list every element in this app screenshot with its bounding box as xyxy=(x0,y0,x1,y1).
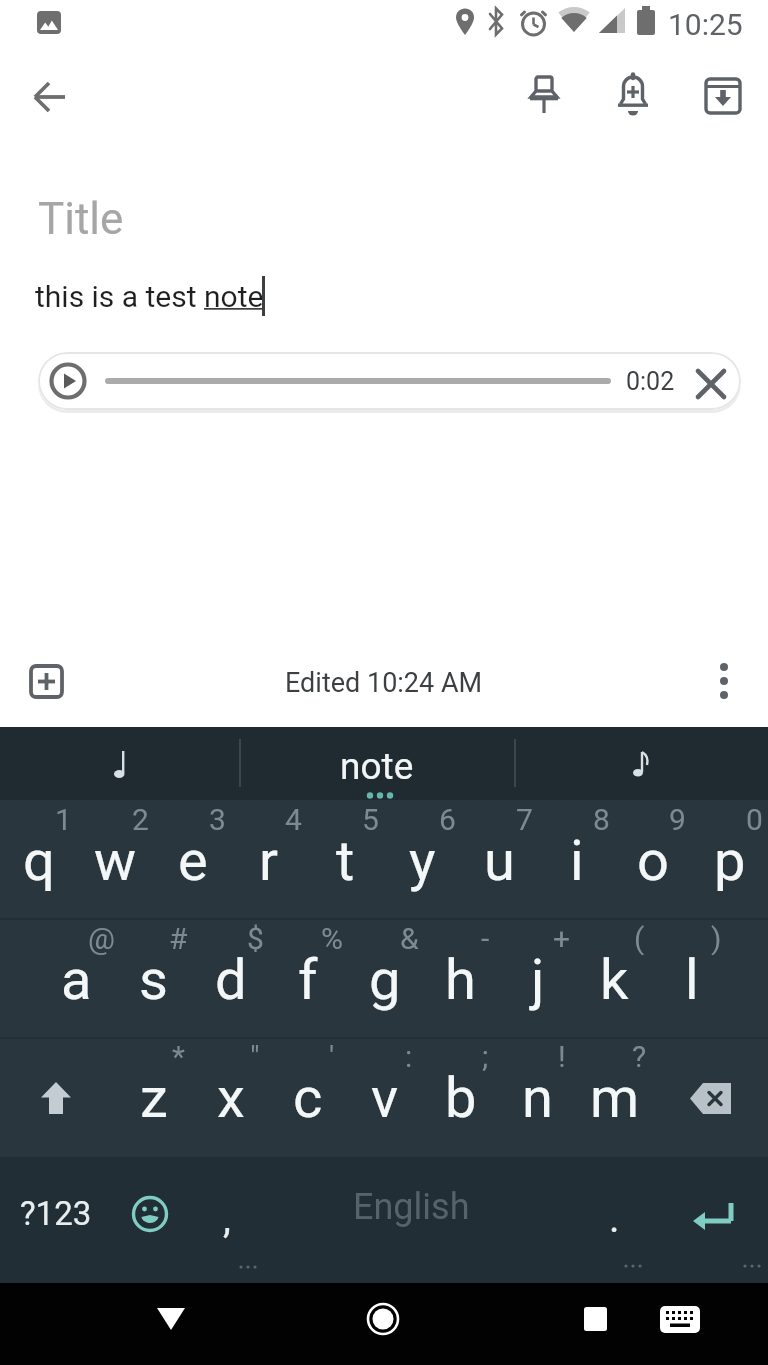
staticText: r xyxy=(259,828,278,894)
staticText: ? xyxy=(632,1039,647,1073)
button[interactable]: w xyxy=(77,806,154,916)
staticText: Title xyxy=(38,193,124,245)
button[interactable]: . xyxy=(592,1185,636,1251)
staticText: 2 xyxy=(132,802,149,836)
button[interactable]: ?123 xyxy=(10,1185,102,1241)
button[interactable] xyxy=(702,76,744,116)
button[interactable]: u xyxy=(461,806,538,916)
button[interactable]: n xyxy=(499,1043,576,1153)
staticText: z xyxy=(140,1065,168,1131)
staticText: d xyxy=(215,947,247,1013)
button[interactable]: e xyxy=(154,806,231,916)
button[interactable]: p xyxy=(691,806,768,916)
button[interactable]: d xyxy=(192,925,269,1035)
staticText: h xyxy=(445,947,476,1013)
staticText: % xyxy=(321,921,343,955)
staticText: & xyxy=(400,921,419,955)
button[interactable]: l xyxy=(653,925,730,1035)
staticText: . xyxy=(609,1195,620,1242)
staticText: ' xyxy=(329,1039,335,1073)
staticText: q xyxy=(23,828,55,894)
staticText: v xyxy=(371,1065,399,1131)
staticText: ; xyxy=(482,1039,489,1073)
staticText: 0:02 xyxy=(626,367,675,396)
button[interactable] xyxy=(613,72,653,118)
staticText: 5 xyxy=(362,802,379,836)
button[interactable] xyxy=(580,1304,610,1334)
button[interactable]: y xyxy=(384,806,461,916)
button[interactable]: x xyxy=(192,1043,269,1153)
staticText: f xyxy=(298,947,318,1013)
button[interactable]: h xyxy=(422,925,499,1035)
button[interactable]: English xyxy=(307,1157,515,1257)
staticText: ( xyxy=(634,921,645,955)
button[interactable]: j xyxy=(499,925,576,1035)
staticText: $ xyxy=(247,921,264,955)
button[interactable] xyxy=(660,1306,702,1335)
button[interactable] xyxy=(693,366,729,402)
staticText: Edited 10:24 AM xyxy=(285,667,483,699)
button[interactable]: q xyxy=(0,806,77,916)
button[interactable]: s xyxy=(115,925,192,1035)
button[interactable]: b xyxy=(422,1043,499,1153)
button[interactable] xyxy=(120,1184,180,1244)
staticText: i xyxy=(570,828,584,894)
staticText: 0 xyxy=(746,802,763,836)
staticText: x xyxy=(217,1065,245,1131)
button[interactable] xyxy=(29,664,65,700)
button[interactable]: note xyxy=(240,730,514,803)
button[interactable] xyxy=(144,1296,198,1342)
button[interactable]: i xyxy=(538,806,615,916)
button[interactable] xyxy=(360,1296,406,1342)
staticText: 7 xyxy=(516,802,533,836)
staticText: s xyxy=(139,947,168,1013)
staticText: 3 xyxy=(209,802,226,836)
staticText: w xyxy=(94,828,137,894)
staticText: k xyxy=(600,947,629,1013)
button[interactable]: f xyxy=(269,925,346,1035)
staticText: * xyxy=(172,1039,185,1073)
staticText: ! xyxy=(558,1039,566,1073)
button[interactable] xyxy=(683,1185,747,1241)
button[interactable] xyxy=(50,363,86,399)
staticText: p xyxy=(714,828,746,894)
staticText: g xyxy=(369,947,401,1013)
button[interactable]: z xyxy=(115,1043,192,1153)
staticText: 8 xyxy=(593,802,610,836)
button[interactable]: o xyxy=(614,806,691,916)
button[interactable] xyxy=(0,727,239,800)
button[interactable] xyxy=(682,1043,742,1153)
staticText: 6 xyxy=(439,802,456,836)
button[interactable]: r xyxy=(230,806,307,916)
staticText: t xyxy=(336,828,355,894)
staticText: @ xyxy=(88,921,115,955)
staticText: ) xyxy=(711,921,722,955)
staticText: m xyxy=(590,1065,640,1131)
button[interactable]: a xyxy=(38,925,115,1035)
staticText: u xyxy=(484,828,515,894)
button[interactable]: v xyxy=(346,1043,423,1153)
button[interactable]: c xyxy=(269,1043,346,1153)
staticText: 4 xyxy=(285,802,302,836)
staticText: + xyxy=(553,921,571,955)
button[interactable]: g xyxy=(346,925,423,1035)
staticText: , xyxy=(223,1195,231,1242)
staticText: 1 xyxy=(55,802,72,836)
button[interactable]: , xyxy=(205,1185,249,1251)
button[interactable]: t xyxy=(307,806,384,916)
staticText: " xyxy=(250,1039,260,1073)
button[interactable] xyxy=(706,662,742,702)
button[interactable] xyxy=(26,1043,86,1153)
staticText: this is a test note xyxy=(35,279,264,314)
staticText: o xyxy=(637,828,669,894)
button[interactable]: k xyxy=(576,925,653,1035)
staticText: e xyxy=(178,828,208,894)
button[interactable]: m xyxy=(576,1043,653,1153)
staticText: c xyxy=(293,1065,323,1131)
staticText: n xyxy=(522,1065,553,1131)
button[interactable] xyxy=(30,78,70,116)
staticText: l xyxy=(685,947,699,1013)
button[interactable] xyxy=(515,727,768,800)
button[interactable] xyxy=(38,352,741,410)
button[interactable] xyxy=(524,74,564,118)
